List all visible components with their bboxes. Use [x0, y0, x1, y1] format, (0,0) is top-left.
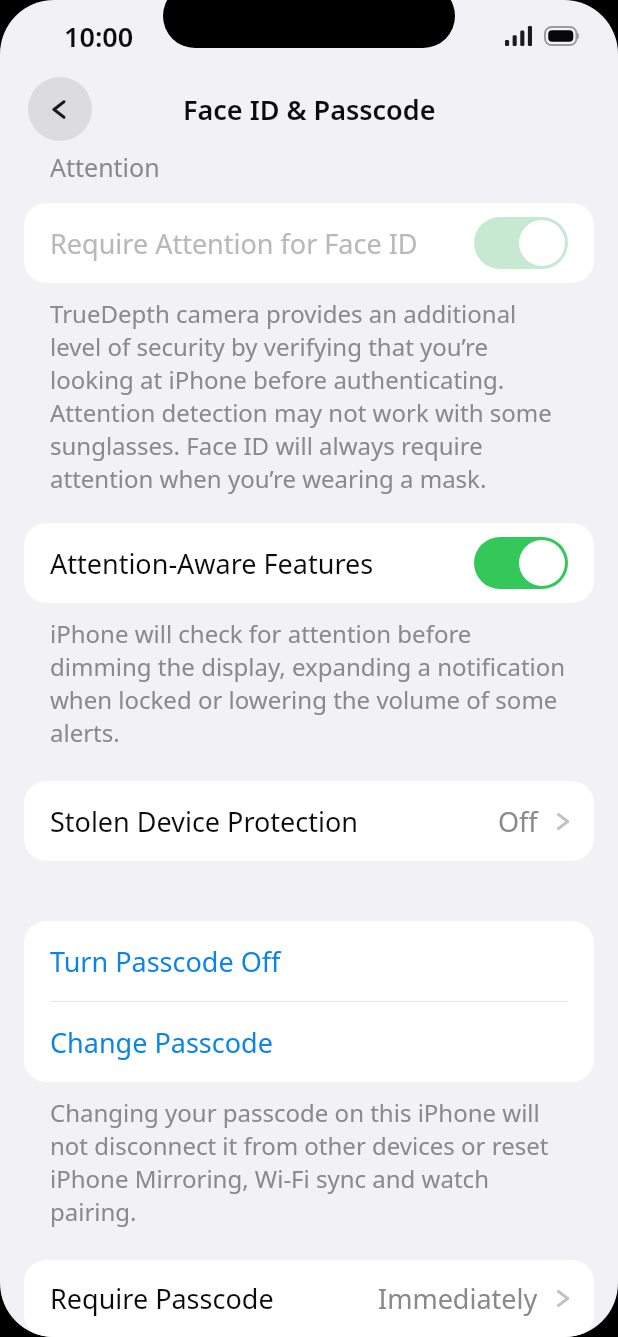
- staticText: Attention-Aware Features: [50, 545, 474, 582]
- staticText: Face ID & Passcode: [183, 91, 436, 128]
- staticText: Require Passcode: [50, 1280, 378, 1317]
- button[interactable]: Stolen Device Protection: [24, 781, 594, 861]
- button[interactable]: Change Passcode: [24, 1002, 594, 1082]
- staticText: Require Attention for Face ID: [50, 225, 474, 262]
- button[interactable]: Back: [28, 77, 92, 141]
- staticText: Changing your passcode on this iPhone wi…: [50, 1096, 568, 1228]
- staticText: Change Passcode: [50, 1024, 273, 1061]
- staticText: Stolen Device Protection: [50, 803, 498, 840]
- button[interactable]: Require Attention for Face ID: [24, 203, 594, 283]
- staticText: iPhone will check for attention before d…: [50, 617, 568, 749]
- button[interactable]: Require Passcode: [24, 1260, 594, 1337]
- button[interactable]: Attention-Aware Features: [24, 523, 594, 603]
- staticText: Immediately: [378, 1280, 538, 1317]
- staticText: Off: [498, 803, 538, 840]
- staticText: Attention: [50, 150, 160, 184]
- staticText: 10:00: [64, 18, 134, 55]
- staticText: Turn Passcode Off: [50, 943, 281, 980]
- button[interactable]: Turn Passcode Off: [24, 921, 594, 1001]
- staticText: TrueDepth camera provides an additional …: [50, 297, 568, 495]
